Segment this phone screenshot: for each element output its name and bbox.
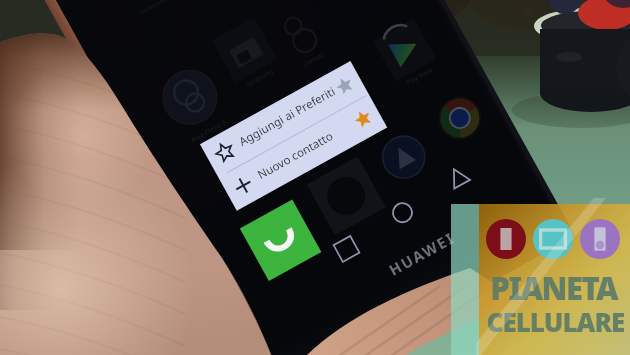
button[interactable]: Huawei phone showing contacts shortcut m… — [0, 0, 630, 355]
